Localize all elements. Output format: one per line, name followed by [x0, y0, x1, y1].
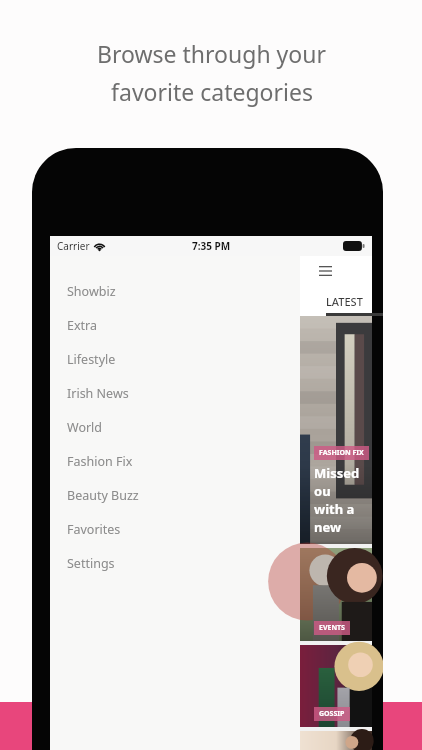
button[interactable]: EVENTS	[300, 548, 372, 641]
button[interactable]: Showbiz	[50, 274, 300, 308]
button[interactable]: Extra	[50, 308, 300, 342]
staticText: Settings	[67, 555, 115, 572]
button[interactable]: Lifestyle	[50, 342, 300, 376]
staticText: Browse through your	[97, 38, 326, 69]
staticText: Carrier	[57, 239, 90, 253]
staticText: FASHION FIX	[319, 448, 364, 458]
staticText: Extra	[67, 317, 98, 334]
button[interactable]: LATEST	[300, 286, 372, 316]
button[interactable]: FASHION FIX	[300, 316, 372, 544]
staticText: LATEST	[326, 294, 363, 309]
button[interactable]: World	[50, 410, 300, 444]
staticText: 7:35 PM	[192, 239, 231, 253]
button[interactable]: Fashion Fix	[50, 444, 300, 478]
staticText: Beauty Buzz	[67, 487, 139, 504]
button[interactable]: Irish News	[50, 376, 300, 410]
staticText: GOSSIP	[319, 709, 345, 719]
staticText: with a new	[314, 500, 372, 536]
staticText: EVENTS	[319, 623, 345, 633]
button[interactable]: Settings	[50, 546, 300, 580]
staticText: Lifestyle	[67, 351, 116, 368]
staticText: Missed ou	[314, 464, 372, 500]
staticText: World	[67, 419, 103, 436]
button[interactable]: GOSSIP	[300, 645, 372, 727]
staticText: Fashion Fix	[67, 453, 133, 470]
staticText: Showbiz	[67, 283, 116, 300]
staticText: Irish News	[67, 385, 129, 402]
staticText: favorite categories	[111, 76, 313, 107]
button[interactable]: Open navigation menu	[314, 260, 336, 282]
staticText: Favorites	[67, 521, 121, 538]
button[interactable]: Favorites	[50, 512, 300, 546]
button[interactable]: Beauty Buzz	[50, 478, 300, 512]
